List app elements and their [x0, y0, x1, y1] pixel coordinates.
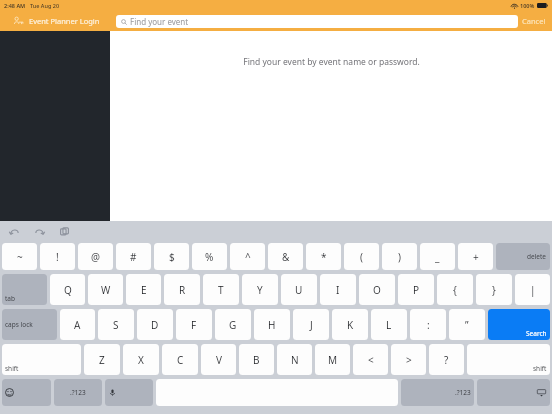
- button[interactable]: N: [277, 344, 312, 375]
- button[interactable]: Undo: [8, 225, 21, 238]
- button[interactable]: ): [382, 243, 417, 270]
- button[interactable]: :: [410, 309, 446, 340]
- button[interactable]: R: [164, 274, 200, 305]
- button[interactable]: Q: [50, 274, 85, 305]
- button[interactable]: Paste: [58, 225, 71, 238]
- button[interactable]: .?123: [54, 379, 102, 406]
- button[interactable]: X: [123, 344, 159, 375]
- button[interactable]: Hide keyboard: [477, 379, 550, 406]
- button[interactable]: {: [437, 274, 473, 305]
- staticText: ^: [245, 250, 251, 264]
- button[interactable]: |: [515, 274, 550, 305]
- button[interactable]: D: [137, 309, 173, 340]
- staticText: &: [282, 250, 290, 264]
- staticText: B: [253, 353, 260, 367]
- button[interactable]: J: [293, 309, 329, 340]
- staticText: >: [406, 353, 412, 367]
- staticText: *: [321, 250, 327, 264]
- staticText: |: [530, 283, 536, 297]
- button[interactable]: shift: [467, 344, 550, 375]
- staticText: S: [113, 318, 119, 332]
- staticText: T: [218, 283, 224, 297]
- button[interactable]: Dictate: [105, 379, 153, 406]
- button[interactable]: Z: [84, 344, 120, 375]
- button[interactable]: ?: [429, 344, 464, 375]
- staticText: shift: [5, 364, 19, 373]
- staticText: caps lock: [5, 320, 33, 329]
- staticText: O: [373, 283, 381, 297]
- button[interactable]: Y: [242, 274, 278, 305]
- button[interactable]: M: [315, 344, 350, 375]
- button[interactable]: caps lock: [2, 309, 57, 340]
- button[interactable]: U: [281, 274, 317, 305]
- staticText: L: [386, 318, 392, 332]
- staticText: Z: [99, 353, 105, 367]
- button[interactable]: Cancel: [518, 16, 550, 26]
- staticText: P: [413, 283, 420, 297]
- button[interactable]: .?123: [401, 379, 474, 406]
- button[interactable]: V: [201, 344, 236, 375]
- button[interactable]: *: [306, 243, 341, 270]
- button[interactable]: H: [254, 309, 290, 340]
- staticText: #: [130, 250, 137, 264]
- button[interactable]: #: [116, 243, 151, 270]
- button[interactable]: shift: [2, 344, 81, 375]
- button[interactable]: G: [215, 309, 251, 340]
- staticText: shift: [533, 364, 547, 373]
- button[interactable]: Emoji: [2, 379, 51, 406]
- button[interactable]: %: [192, 243, 227, 270]
- button[interactable]: C: [162, 344, 198, 375]
- button[interactable]: A: [60, 309, 95, 340]
- button[interactable]: B: [239, 344, 274, 375]
- staticText: K: [347, 318, 354, 332]
- staticText: Search: [526, 329, 547, 338]
- staticText: tab: [5, 294, 15, 303]
- button[interactable]: >: [391, 344, 426, 375]
- button[interactable]: I: [320, 274, 356, 305]
- button[interactable]: Redo: [33, 225, 46, 238]
- button[interactable]: K: [332, 309, 368, 340]
- button[interactable]: S: [98, 309, 134, 340]
- button[interactable]: Find your event: [116, 15, 518, 28]
- staticText: +: [473, 250, 479, 264]
- button[interactable]: Event Planner Login: [0, 11, 110, 31]
- button[interactable]: L: [371, 309, 407, 340]
- staticText: .?123: [70, 388, 86, 397]
- button[interactable]: E: [126, 274, 161, 305]
- button[interactable]: @: [78, 243, 113, 270]
- staticText: .?123: [455, 388, 471, 397]
- button[interactable]: &: [268, 243, 303, 270]
- staticText: Find your event: [130, 16, 189, 27]
- button[interactable]: _: [420, 243, 455, 270]
- staticText: Tue Aug 20: [30, 2, 60, 9]
- button[interactable]: }: [476, 274, 512, 305]
- button[interactable]: (: [344, 243, 379, 270]
- staticText: Cancel: [522, 16, 546, 26]
- button[interactable]: W: [88, 274, 123, 305]
- button[interactable]: T: [203, 274, 239, 305]
- button[interactable]: Search: [488, 309, 550, 340]
- button[interactable]: delete: [496, 243, 550, 270]
- staticText: delete: [527, 252, 547, 261]
- staticText: (: [360, 250, 363, 264]
- button[interactable]: ^: [230, 243, 265, 270]
- button[interactable]: P: [398, 274, 434, 305]
- staticText: ?: [444, 353, 449, 367]
- button[interactable]: F: [176, 309, 212, 340]
- button[interactable]: +: [458, 243, 493, 270]
- button[interactable]: ”: [449, 309, 485, 340]
- staticText: D: [151, 318, 159, 332]
- button[interactable]: $: [154, 243, 189, 270]
- button[interactable]: <: [353, 344, 388, 375]
- button[interactable]: tab: [2, 274, 47, 305]
- staticText: {: [453, 283, 457, 297]
- staticText: ~: [17, 250, 23, 264]
- button[interactable]: !: [40, 243, 75, 270]
- staticText: %: [205, 250, 214, 264]
- staticText: J: [310, 318, 313, 332]
- button[interactable]: ~: [2, 243, 37, 270]
- staticText: }: [492, 283, 496, 297]
- staticText: V: [216, 353, 222, 367]
- button[interactable]: O: [359, 274, 395, 305]
